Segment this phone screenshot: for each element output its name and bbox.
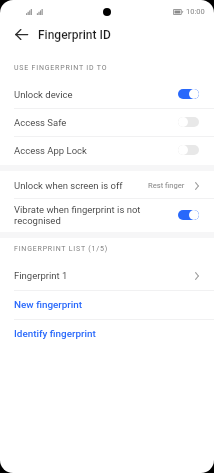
button[interactable]: Unlock when screen is off: [0, 172, 214, 199]
button[interactable]: Back: [0, 20, 43, 49]
staticText: Rest finger: [148, 181, 185, 190]
staticText: New fingerprint: [14, 299, 83, 311]
staticText: Access App Lock: [14, 145, 178, 156]
button[interactable]: Unlock device: [0, 80, 214, 108]
staticText: FINGERPRINT LIST (1/5): [14, 245, 108, 253]
button[interactable]: Access App Lock: [0, 136, 214, 164]
staticText: Access Safe: [14, 117, 178, 128]
staticText: Vibrate when fingerprint is not: [14, 204, 141, 215]
button[interactable]: Identify fingerprint: [0, 319, 214, 348]
staticText: recognised: [14, 215, 61, 226]
staticText: Fingerprint ID: [38, 28, 111, 42]
button[interactable]: Access Safe: [0, 108, 214, 136]
staticText: USE FINGERPRINT ID TO: [14, 64, 108, 72]
button[interactable]: Vibrate when fingerprint is not: [0, 198, 214, 232]
button[interactable]: Fingerprint 1: [0, 261, 214, 290]
staticText: Unlock when screen is off: [14, 180, 148, 191]
staticText: Unlock device: [14, 89, 178, 100]
staticText: Fingerprint 1: [14, 270, 195, 281]
button[interactable]: New fingerprint: [0, 290, 214, 319]
staticText: 10:00: [186, 7, 205, 16]
staticText: Identify fingerprint: [14, 328, 96, 340]
